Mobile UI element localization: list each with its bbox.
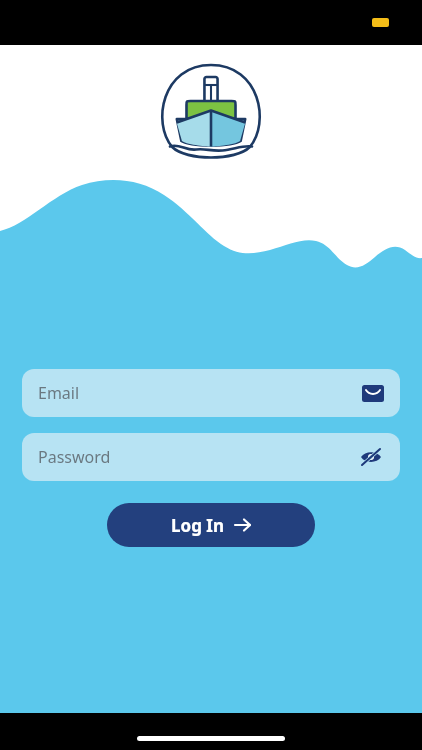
button[interactable]: Email xyxy=(22,369,400,417)
button[interactable]: Password xyxy=(22,433,400,481)
button[interactable]: Log In xyxy=(107,503,315,547)
staticText: Log In xyxy=(171,514,224,537)
button[interactable]: Show password xyxy=(356,442,386,472)
staticText: Email xyxy=(38,382,360,404)
button[interactable]: Email xyxy=(360,380,386,406)
staticText: Password xyxy=(38,446,356,468)
